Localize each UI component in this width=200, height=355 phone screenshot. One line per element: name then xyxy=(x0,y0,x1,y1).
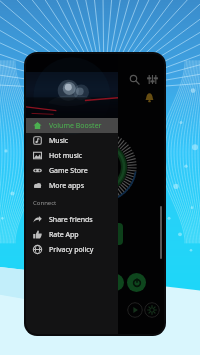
button[interactable]: Privacy policy xyxy=(26,242,118,257)
staticText: Volume Booster xyxy=(49,121,102,131)
staticText: Game Store xyxy=(49,166,88,176)
staticText: Rate App xyxy=(49,230,79,240)
button[interactable]: Volume slider xyxy=(160,206,162,259)
staticText: Share friends xyxy=(49,215,93,225)
button[interactable]: Music xyxy=(26,133,118,148)
button[interactable]: Boost xyxy=(107,274,124,291)
button[interactable]: Play xyxy=(127,302,143,318)
button[interactable]: Game Store xyxy=(26,163,118,178)
button[interactable]: Rate App xyxy=(26,227,118,242)
staticText: More apps xyxy=(49,181,84,191)
staticText: Connect xyxy=(33,199,57,207)
button[interactable]: More apps xyxy=(26,178,118,193)
button[interactable]: Notifications xyxy=(144,92,155,103)
button[interactable]: Power xyxy=(127,273,146,292)
staticText: Privacy policy xyxy=(49,245,94,255)
button[interactable]: Volume Booster xyxy=(26,118,118,133)
button[interactable]: Share friends xyxy=(26,212,118,227)
staticText: Hot music xyxy=(49,151,83,161)
button[interactable]: Hot music xyxy=(26,148,118,163)
button[interactable]: Settings xyxy=(144,302,160,318)
button[interactable]: Mute xyxy=(112,223,123,245)
button[interactable]: Search xyxy=(129,74,140,85)
button[interactable]: Equalizer xyxy=(147,74,158,85)
staticText: Music xyxy=(49,136,69,146)
